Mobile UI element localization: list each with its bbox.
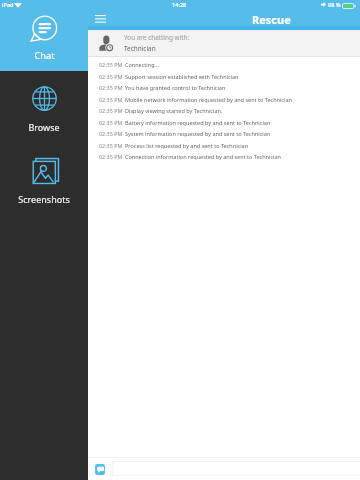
button[interactable]: Open chat: [95, 464, 105, 475]
staticText: 14:28: [172, 1, 187, 9]
staticText: Technician: [124, 44, 156, 53]
staticText: Chat: [34, 49, 55, 62]
staticText: 02:35 PM: [99, 130, 123, 137]
staticText: Connection information requested by and …: [125, 153, 281, 160]
staticText: Mobile network information requested by …: [125, 96, 292, 103]
staticText: 02:35 PM: [99, 96, 123, 103]
staticText: Battery information requested by and sen…: [125, 119, 271, 126]
staticText: Process list requested by and sent to Te…: [125, 142, 249, 149]
button[interactable]: Menu: [93, 13, 107, 25]
staticText: 02:35 PM: [99, 142, 123, 149]
staticText: Support session established with Technic…: [125, 73, 239, 80]
staticText: 98 %: [328, 1, 341, 9]
staticText: You are chatting with:: [124, 33, 190, 42]
staticText: Browse: [28, 121, 60, 133]
button[interactable]: Screenshots: [0, 142, 88, 213]
staticText: 02:35 PM: [99, 153, 123, 160]
staticText: 02:35 PM: [99, 61, 123, 68]
staticText: You have granted control to Technician: [125, 84, 226, 91]
staticText: 02:35 PM: [99, 84, 123, 91]
staticText: 02:35 PM: [99, 107, 123, 114]
button[interactable]: You are chatting with:: [88, 30, 360, 56]
staticText: Screenshots: [18, 193, 70, 205]
button[interactable]: Chat: [0, 14, 88, 71]
staticText: Connecting...: [125, 61, 159, 68]
staticText: iPad: [2, 1, 14, 9]
staticText: 02:35 PM: [99, 119, 123, 126]
staticText: Display viewing started by Technician.: [125, 107, 223, 114]
staticText: System information requested by and sent…: [125, 130, 271, 137]
staticText: 02:35 PM: [99, 73, 123, 80]
staticText: Rescue: [252, 12, 291, 27]
button[interactable]: Browse: [0, 71, 88, 142]
